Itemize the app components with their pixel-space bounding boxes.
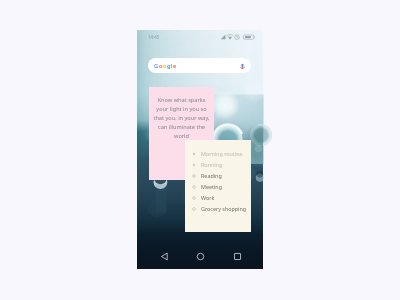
staticText: Reading: [201, 172, 222, 179]
button[interactable]: Morning routine: [192, 148, 248, 159]
staticText: e: [173, 62, 177, 70]
button[interactable]: Reading: [192, 170, 248, 181]
button[interactable]: Home: [190, 246, 210, 266]
staticText: 14:45: [148, 34, 160, 40]
button[interactable]: Work: [192, 192, 248, 203]
staticText: Running: [201, 161, 223, 168]
button[interactable]: Grocery shopping: [192, 203, 248, 214]
button[interactable]: Recents: [227, 246, 247, 266]
staticText: o: [163, 62, 167, 70]
staticText: o: [159, 62, 163, 70]
staticText: g: [167, 62, 171, 70]
button[interactable]: Know what sparks your light in you so th…: [149, 87, 214, 180]
staticText: l: [171, 62, 173, 70]
button[interactable]: Meeting: [192, 181, 248, 192]
staticText: Work: [201, 194, 215, 201]
staticText: G: [154, 62, 159, 70]
staticText: Know what sparks your light in you so th…: [151, 96, 212, 139]
staticText: Morning routine: [201, 150, 243, 157]
button[interactable]: G: [148, 58, 251, 73]
button[interactable]: Running: [192, 159, 248, 170]
staticText: Grocery shopping: [201, 205, 247, 212]
staticText: Meeting: [201, 183, 222, 190]
button[interactable]: Back: [154, 246, 174, 266]
